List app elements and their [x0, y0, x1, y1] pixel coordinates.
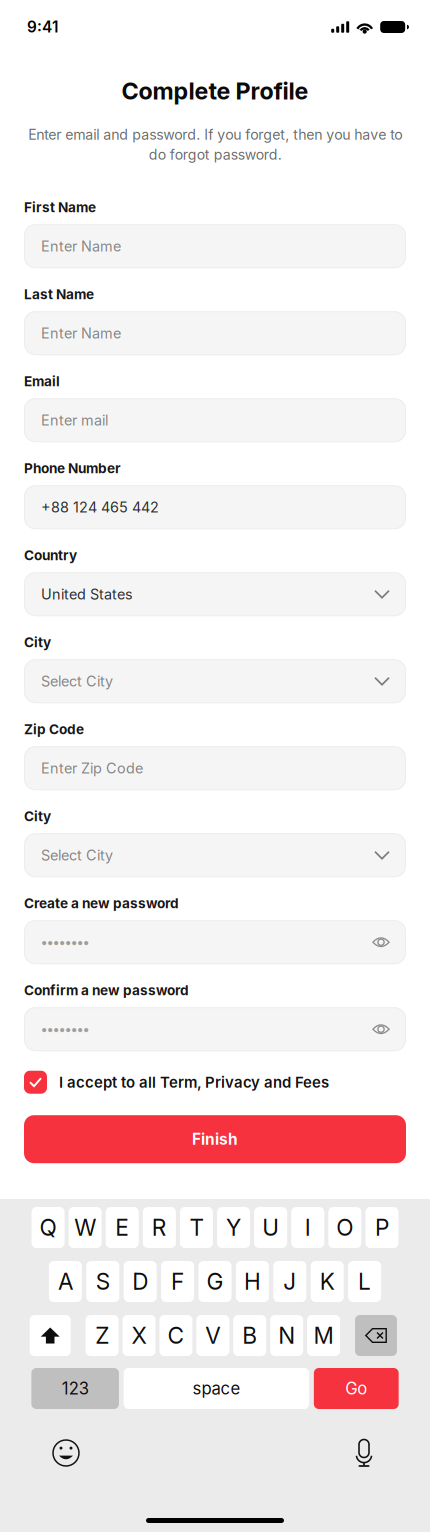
- button[interactable]: B: [233, 1315, 266, 1356]
- staticText: Enter mail: [41, 411, 108, 429]
- button[interactable]: Y: [217, 1207, 250, 1248]
- button[interactable]: space: [124, 1368, 309, 1409]
- button[interactable]: V: [196, 1315, 229, 1356]
- staticText: S: [96, 1268, 110, 1295]
- button[interactable]: United States: [24, 572, 406, 616]
- button[interactable]: Enter Name: [24, 224, 406, 268]
- staticText: P: [375, 1214, 389, 1241]
- staticText: Enter Zip Code: [41, 759, 143, 777]
- button[interactable]: Finish: [0, 1115, 430, 1163]
- staticText: E: [115, 1214, 129, 1241]
- staticText: I accept to all Term, Privacy and Fees: [59, 1073, 329, 1091]
- button[interactable]: Z: [86, 1315, 119, 1356]
- staticText: Finish: [192, 1130, 238, 1148]
- staticText: R: [152, 1214, 167, 1241]
- staticText: Q: [40, 1214, 57, 1241]
- staticText: ••••••••: [41, 934, 89, 950]
- staticText: Select City: [41, 672, 113, 690]
- button[interactable]: E: [106, 1207, 139, 1248]
- staticText: Confirm a new password: [24, 982, 189, 998]
- staticText: F: [171, 1268, 184, 1295]
- button[interactable]: R: [143, 1207, 176, 1248]
- button[interactable]: S: [86, 1261, 119, 1302]
- button[interactable]: Enter mail: [24, 398, 406, 442]
- staticText: K: [320, 1268, 335, 1295]
- button[interactable]: +88 124 465 442: [24, 485, 406, 529]
- staticText: V: [205, 1322, 220, 1349]
- button[interactable]: F: [161, 1261, 194, 1302]
- staticText: Enter Name: [41, 237, 121, 255]
- button[interactable]: I: [291, 1207, 324, 1248]
- button[interactable]: Go: [314, 1368, 399, 1409]
- button[interactable]: Q: [32, 1207, 65, 1248]
- staticText: Y: [226, 1214, 241, 1241]
- staticText: Go: [345, 1378, 367, 1399]
- button[interactable]: Emoji keyboard: [44, 1436, 88, 1470]
- staticText: T: [189, 1214, 203, 1241]
- staticText: First Name: [24, 199, 96, 215]
- button[interactable]: N: [270, 1315, 303, 1356]
- button[interactable]: H: [236, 1261, 269, 1302]
- staticText: B: [242, 1322, 257, 1349]
- staticText: Email: [24, 373, 60, 389]
- staticText: space: [192, 1378, 240, 1399]
- staticText: N: [278, 1322, 295, 1349]
- button[interactable]: Shift: [30, 1315, 71, 1356]
- button[interactable]: J: [273, 1261, 306, 1302]
- staticText: J: [283, 1268, 296, 1295]
- staticText: Phone Number: [24, 460, 121, 476]
- button[interactable]: U: [254, 1207, 287, 1248]
- button[interactable]: Select City: [24, 833, 406, 877]
- staticText: H: [244, 1268, 261, 1295]
- button[interactable]: Dictation: [342, 1436, 386, 1470]
- staticText: City: [24, 634, 51, 650]
- button[interactable]: Enter Name: [24, 311, 406, 355]
- staticText: United States: [41, 585, 133, 603]
- staticText: M: [314, 1322, 334, 1349]
- button[interactable]: T: [180, 1207, 213, 1248]
- button[interactable]: ••••••••: [24, 1007, 406, 1051]
- staticText: Country: [24, 547, 77, 563]
- staticText: X: [132, 1322, 147, 1349]
- staticText: 9:41: [27, 18, 58, 36]
- staticText: +88 124 465 442: [41, 498, 159, 516]
- staticText: I: [305, 1214, 311, 1241]
- staticText: U: [262, 1214, 279, 1241]
- button[interactable]: M: [307, 1315, 340, 1356]
- staticText: Complete Profile: [121, 77, 308, 105]
- staticText: G: [206, 1268, 223, 1295]
- staticText: A: [58, 1268, 73, 1295]
- staticText: ••••••••: [41, 1021, 89, 1037]
- staticText: Enter email and password. If you forget,…: [28, 126, 402, 163]
- button[interactable]: Delete: [355, 1315, 397, 1356]
- button[interactable]: I accept to all Term, Privacy and Fees: [0, 1070, 430, 1094]
- staticText: Last Name: [24, 286, 94, 302]
- staticText: Enter Name: [41, 324, 121, 342]
- staticText: Z: [95, 1322, 109, 1349]
- button[interactable]: P: [365, 1207, 398, 1248]
- staticText: W: [74, 1214, 96, 1241]
- button[interactable]: K: [311, 1261, 344, 1302]
- button[interactable]: G: [198, 1261, 231, 1302]
- staticText: Select City: [41, 846, 113, 864]
- button[interactable]: L: [348, 1261, 381, 1302]
- button[interactable]: W: [69, 1207, 102, 1248]
- staticText: O: [336, 1214, 353, 1241]
- button[interactable]: Select City: [24, 659, 406, 703]
- button[interactable]: D: [124, 1261, 157, 1302]
- staticText: C: [167, 1322, 184, 1349]
- button[interactable]: A: [49, 1261, 82, 1302]
- button[interactable]: O: [328, 1207, 361, 1248]
- button[interactable]: ••••••••: [24, 920, 406, 964]
- staticText: City: [24, 808, 51, 824]
- button[interactable]: C: [159, 1315, 192, 1356]
- staticText: Create a new password: [24, 895, 179, 911]
- staticText: D: [132, 1268, 148, 1295]
- staticText: 123: [62, 1378, 89, 1399]
- button[interactable]: Enter Zip Code: [24, 746, 406, 790]
- staticText: Zip Code: [24, 721, 84, 737]
- staticText: L: [358, 1268, 371, 1295]
- button[interactable]: X: [123, 1315, 156, 1356]
- button[interactable]: 123: [31, 1368, 119, 1409]
